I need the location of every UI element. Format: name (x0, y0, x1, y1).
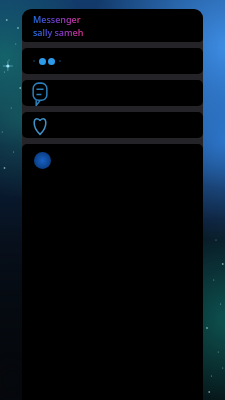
button[interactable]: Profile (22, 144, 203, 400)
button[interactable] (22, 48, 203, 74)
button[interactable]: Messages (22, 80, 203, 106)
button[interactable]: Favorites (22, 112, 203, 138)
button[interactable]: Messages (31, 80, 49, 106)
staticText: Messenger (33, 13, 81, 25)
staticText: sally sameh (33, 26, 84, 38)
button[interactable]: Favorites (31, 112, 49, 138)
button[interactable]: Messenger (22, 9, 203, 42)
button[interactable]: Profile (34, 152, 51, 169)
